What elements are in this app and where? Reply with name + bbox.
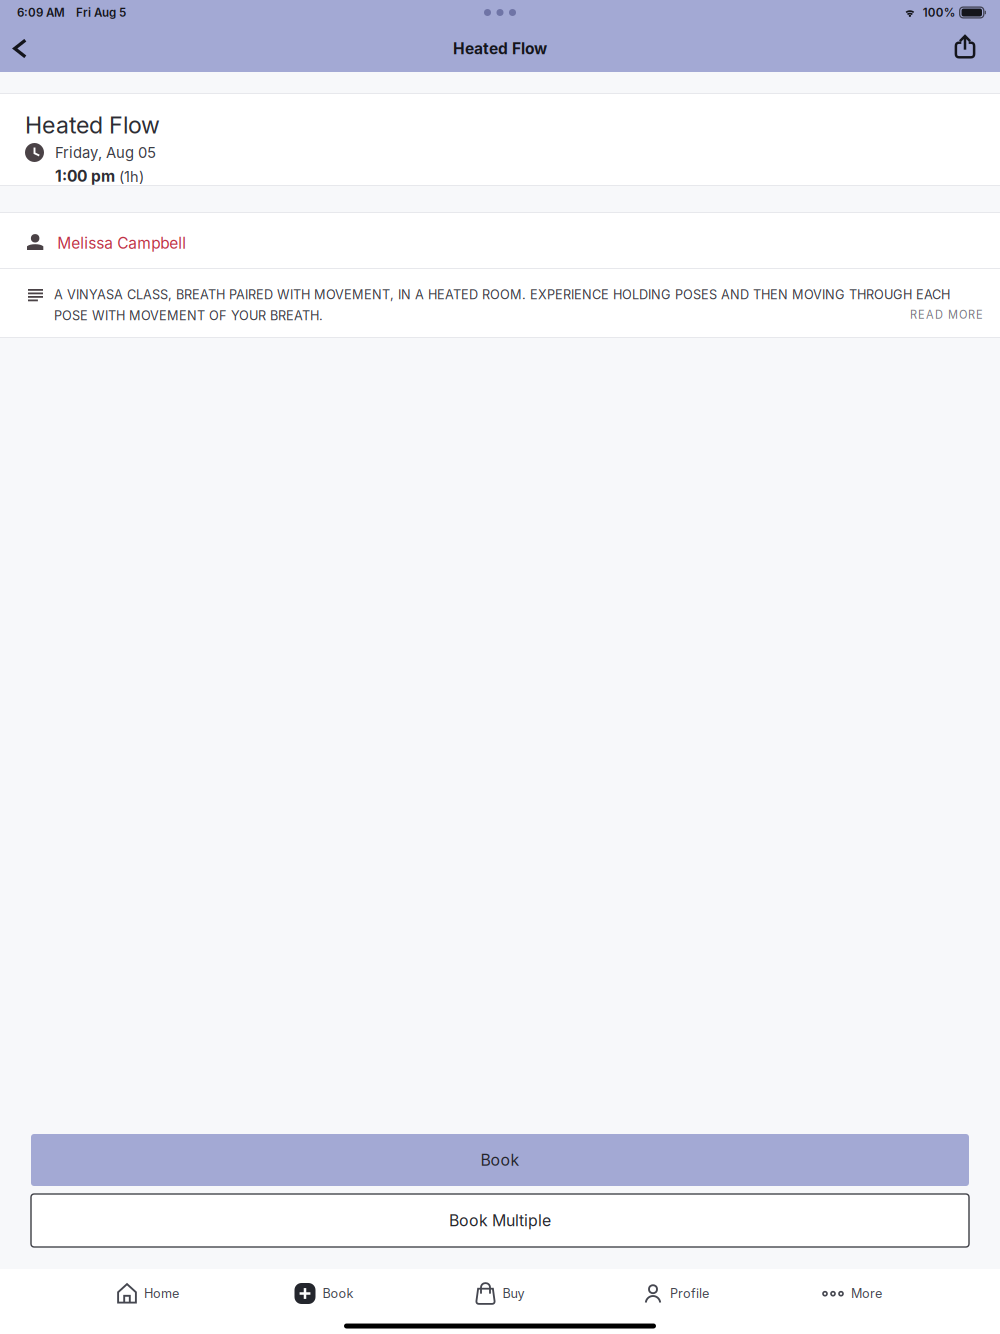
- button[interactable]: Home: [60, 1269, 236, 1318]
- staticText: Heated Flow: [453, 39, 547, 58]
- staticText: 100%: [923, 5, 956, 19]
- staticText: Home: [144, 1286, 179, 1301]
- staticText: Book: [322, 1286, 353, 1301]
- button[interactable]: Book: [31, 1134, 969, 1186]
- button[interactable]: Profile: [588, 1269, 764, 1318]
- staticText: Melissa Campbell: [57, 234, 186, 252]
- staticText: R E A D M O R E: [910, 308, 983, 321]
- button[interactable]: Melissa Campbell: [0, 213, 1000, 268]
- staticText: Book: [480, 1150, 519, 1170]
- staticText: More: [851, 1286, 882, 1301]
- staticText: A VINYASA CLASS, BREATH PAIRED WITH MOVE…: [54, 287, 950, 323]
- button[interactable]: A VINYASA CLASS, BREATH PAIRED WITH MOVE…: [0, 269, 1000, 337]
- staticText: Friday, Aug 05: [55, 143, 156, 161]
- button[interactable]: Back: [0, 25, 40, 72]
- button[interactable]: More: [764, 1269, 940, 1318]
- staticText: Profile: [670, 1286, 709, 1301]
- staticText: (1h): [119, 168, 144, 185]
- button[interactable]: Book: [236, 1269, 412, 1318]
- staticText: 6:09 AM: [17, 5, 65, 19]
- button[interactable]: Book Multiple: [31, 1194, 969, 1247]
- button[interactable]: Buy: [412, 1269, 588, 1318]
- staticText: Book Multiple: [449, 1211, 551, 1230]
- staticText: Buy: [502, 1286, 524, 1301]
- staticText: 1:00 pm: [55, 167, 115, 185]
- staticText: Heated Flow: [25, 111, 160, 139]
- staticText: Fri Aug 5: [76, 5, 126, 19]
- button[interactable]: Share: [943, 25, 987, 72]
